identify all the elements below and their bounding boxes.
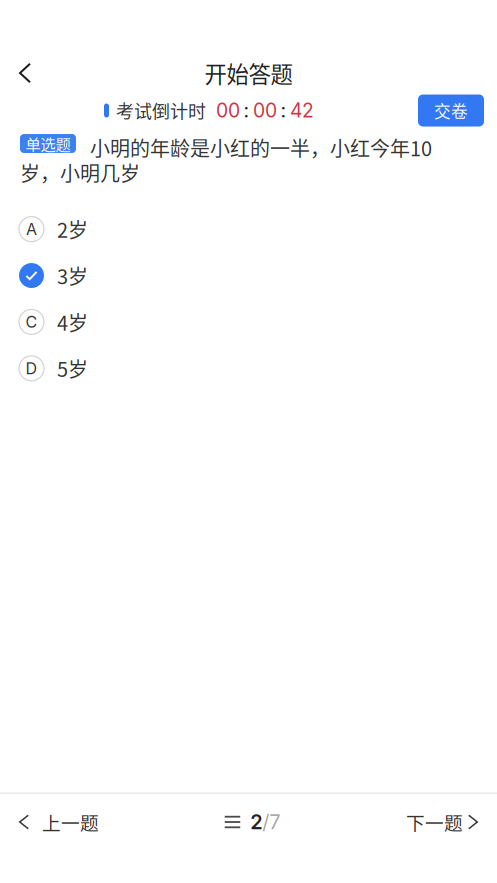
staticText: 00 bbox=[253, 99, 277, 122]
staticText: : bbox=[280, 99, 286, 122]
button[interactable]: 2 bbox=[213, 794, 292, 850]
button[interactable]: 3岁 bbox=[0, 252, 497, 299]
staticText: 下一题 bbox=[406, 808, 463, 835]
staticText: 小明的年龄是小红的一半，小红今年10岁，小明几岁 bbox=[20, 133, 432, 187]
staticText: : bbox=[243, 99, 249, 122]
staticText: 5岁 bbox=[57, 354, 88, 383]
button[interactable]: 交卷 bbox=[418, 94, 484, 126]
staticText: 单选题 bbox=[25, 132, 70, 155]
staticText: 4岁 bbox=[57, 307, 88, 336]
staticText: 3岁 bbox=[57, 261, 88, 290]
staticText: 00 bbox=[216, 99, 240, 122]
staticText: 2岁 bbox=[57, 215, 88, 244]
staticText: D bbox=[25, 359, 37, 378]
staticText: 上一题 bbox=[42, 808, 99, 835]
staticText: C bbox=[25, 312, 37, 332]
staticText: 考试倒计时 bbox=[116, 97, 206, 124]
staticText: A bbox=[26, 219, 37, 239]
staticText: 交卷 bbox=[434, 98, 468, 122]
button[interactable]: 下一题 bbox=[387, 794, 497, 850]
button[interactable]: D bbox=[0, 345, 497, 391]
staticText: /7 bbox=[262, 810, 280, 834]
button[interactable]: A bbox=[0, 206, 497, 252]
button[interactable]: Back bbox=[0, 51, 45, 95]
staticText: 42 bbox=[290, 99, 314, 122]
staticText: 2 bbox=[250, 810, 262, 834]
button[interactable]: 上一题 bbox=[0, 794, 118, 850]
staticText: 开始答题 bbox=[204, 57, 292, 89]
button[interactable]: C bbox=[0, 299, 497, 345]
